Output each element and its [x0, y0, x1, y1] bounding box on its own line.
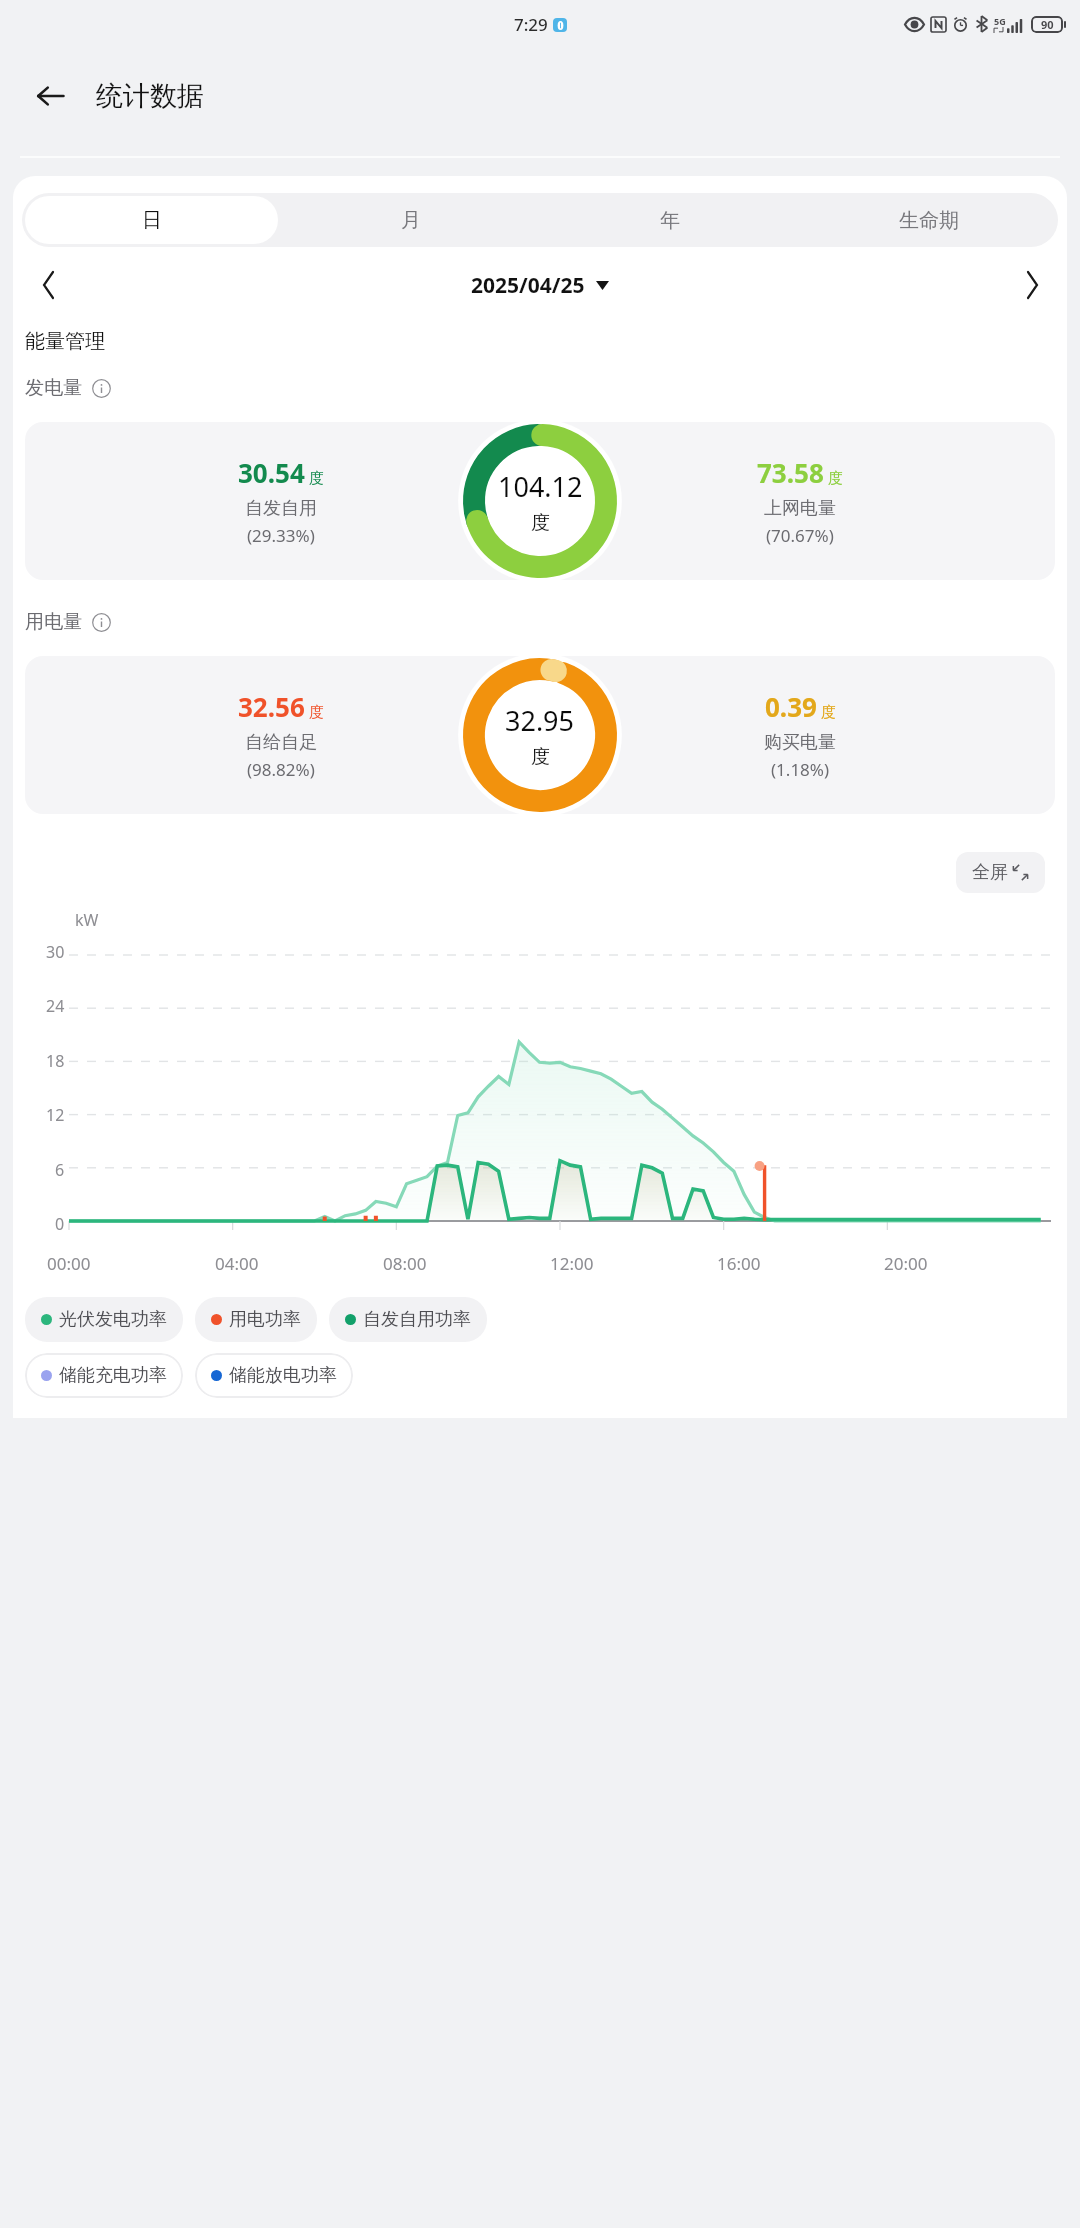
button[interactable]: Previous day: [25, 262, 71, 308]
staticText: 24: [46, 995, 65, 1017]
staticText: 7:29: [514, 13, 548, 36]
staticText: 自发自用: [245, 497, 317, 520]
staticText: 月: [401, 208, 421, 233]
button[interactable]: Back: [22, 68, 78, 124]
staticText: 自发自用功率: [363, 1308, 471, 1331]
staticText: 30: [46, 941, 65, 963]
staticText: 104.12: [498, 468, 583, 505]
button[interactable]: 光伏发电功率: [25, 1297, 183, 1342]
staticText: (70.67%): [766, 524, 834, 547]
staticText: 发电量: [25, 376, 82, 400]
button[interactable]: 自发自用功率: [329, 1297, 487, 1342]
button[interactable]: 全屏: [956, 852, 1045, 893]
staticText: 能量管理: [25, 329, 105, 354]
staticText: 32.95: [505, 702, 575, 739]
staticText: 度: [821, 703, 836, 722]
button[interactable]: 月: [284, 196, 537, 244]
staticText: 5G: [994, 15, 1006, 27]
staticText: 6: [55, 1159, 65, 1181]
staticText: 统计数据: [96, 79, 204, 113]
staticText: 12: [46, 1104, 65, 1126]
button[interactable]: 73.58: [544, 422, 1055, 580]
staticText: 储能放电功率: [229, 1364, 337, 1387]
staticText: 0: [55, 1213, 65, 1235]
staticText: (29.33%): [247, 524, 315, 547]
staticText: 度: [531, 511, 550, 535]
button[interactable]: 储能放电功率: [195, 1353, 353, 1398]
staticText: (98.82%): [247, 758, 315, 781]
staticText: 日: [142, 208, 162, 233]
staticText: 73.58: [757, 455, 824, 490]
staticText: 度: [309, 703, 324, 722]
staticText: 储能充电功率: [59, 1364, 167, 1387]
button[interactable]: 32.56: [25, 656, 536, 814]
button[interactable]: 年: [543, 196, 796, 244]
staticText: 度: [309, 469, 324, 488]
staticText: 度: [531, 745, 550, 769]
staticText: kW: [75, 909, 99, 931]
staticText: 30.54: [238, 455, 305, 490]
staticText: 00:00: [47, 1252, 91, 1275]
staticText: 12:00: [550, 1252, 594, 1275]
staticText: 18: [46, 1050, 65, 1072]
staticText: 32.56: [238, 689, 305, 724]
staticText: 自给自足: [245, 731, 317, 754]
staticText: 用电量: [25, 610, 82, 634]
button[interactable]: 储能充电功率: [25, 1353, 183, 1398]
button[interactable]: Info: [90, 377, 112, 399]
staticText: 16:00: [717, 1252, 761, 1275]
staticText: 上网电量: [764, 497, 836, 520]
staticText: 04:00: [215, 1252, 259, 1275]
staticText: 用电功率: [229, 1308, 301, 1331]
button[interactable]: 用电功率: [195, 1297, 317, 1342]
button[interactable]: 生命期: [802, 196, 1055, 244]
staticText: 购买电量: [764, 731, 836, 754]
staticText: 90: [1041, 17, 1054, 32]
button[interactable]: 2025/04/25: [71, 257, 1009, 313]
staticText: 年: [660, 208, 680, 233]
staticText: (1.18%): [771, 758, 830, 781]
staticText: 光伏发电功率: [59, 1308, 167, 1331]
staticText: 度: [828, 469, 843, 488]
staticText: 全屏: [972, 861, 1008, 884]
button[interactable]: Info: [90, 611, 112, 633]
staticText: 生命期: [899, 208, 959, 233]
button[interactable]: 日: [25, 196, 278, 244]
button[interactable]: 30.54: [25, 422, 536, 580]
staticText: 08:00: [383, 1252, 427, 1275]
staticText: 20:00: [884, 1252, 928, 1275]
button[interactable]: 0.39: [544, 656, 1055, 814]
button[interactable]: Next day: [1009, 262, 1055, 308]
staticText: 2025/04/25: [471, 271, 585, 300]
staticText: 0.39: [765, 689, 817, 724]
